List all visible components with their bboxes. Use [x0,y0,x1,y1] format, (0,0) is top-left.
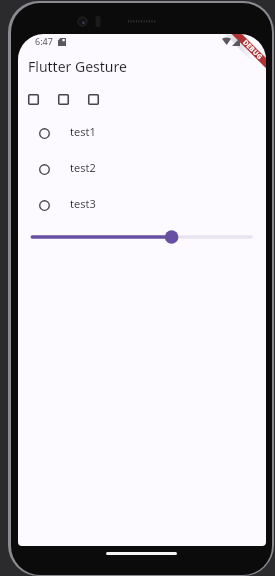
button[interactable]: Slider [18,227,266,247]
button[interactable]: test1 [18,115,266,151]
staticText: test3 [70,196,96,211]
staticText: 6:47 [35,35,53,47]
button[interactable]: Checkbox [88,94,118,105]
button[interactable]: test3 [18,187,266,223]
staticText: test1 [70,124,96,139]
staticText: DEBUG [241,38,265,62]
button[interactable]: test2 [18,151,266,187]
staticText: test2 [70,160,96,175]
button[interactable]: Checkbox [28,94,58,105]
staticText: Flutter Gesture [28,57,127,76]
button[interactable]: Checkbox [58,94,88,105]
